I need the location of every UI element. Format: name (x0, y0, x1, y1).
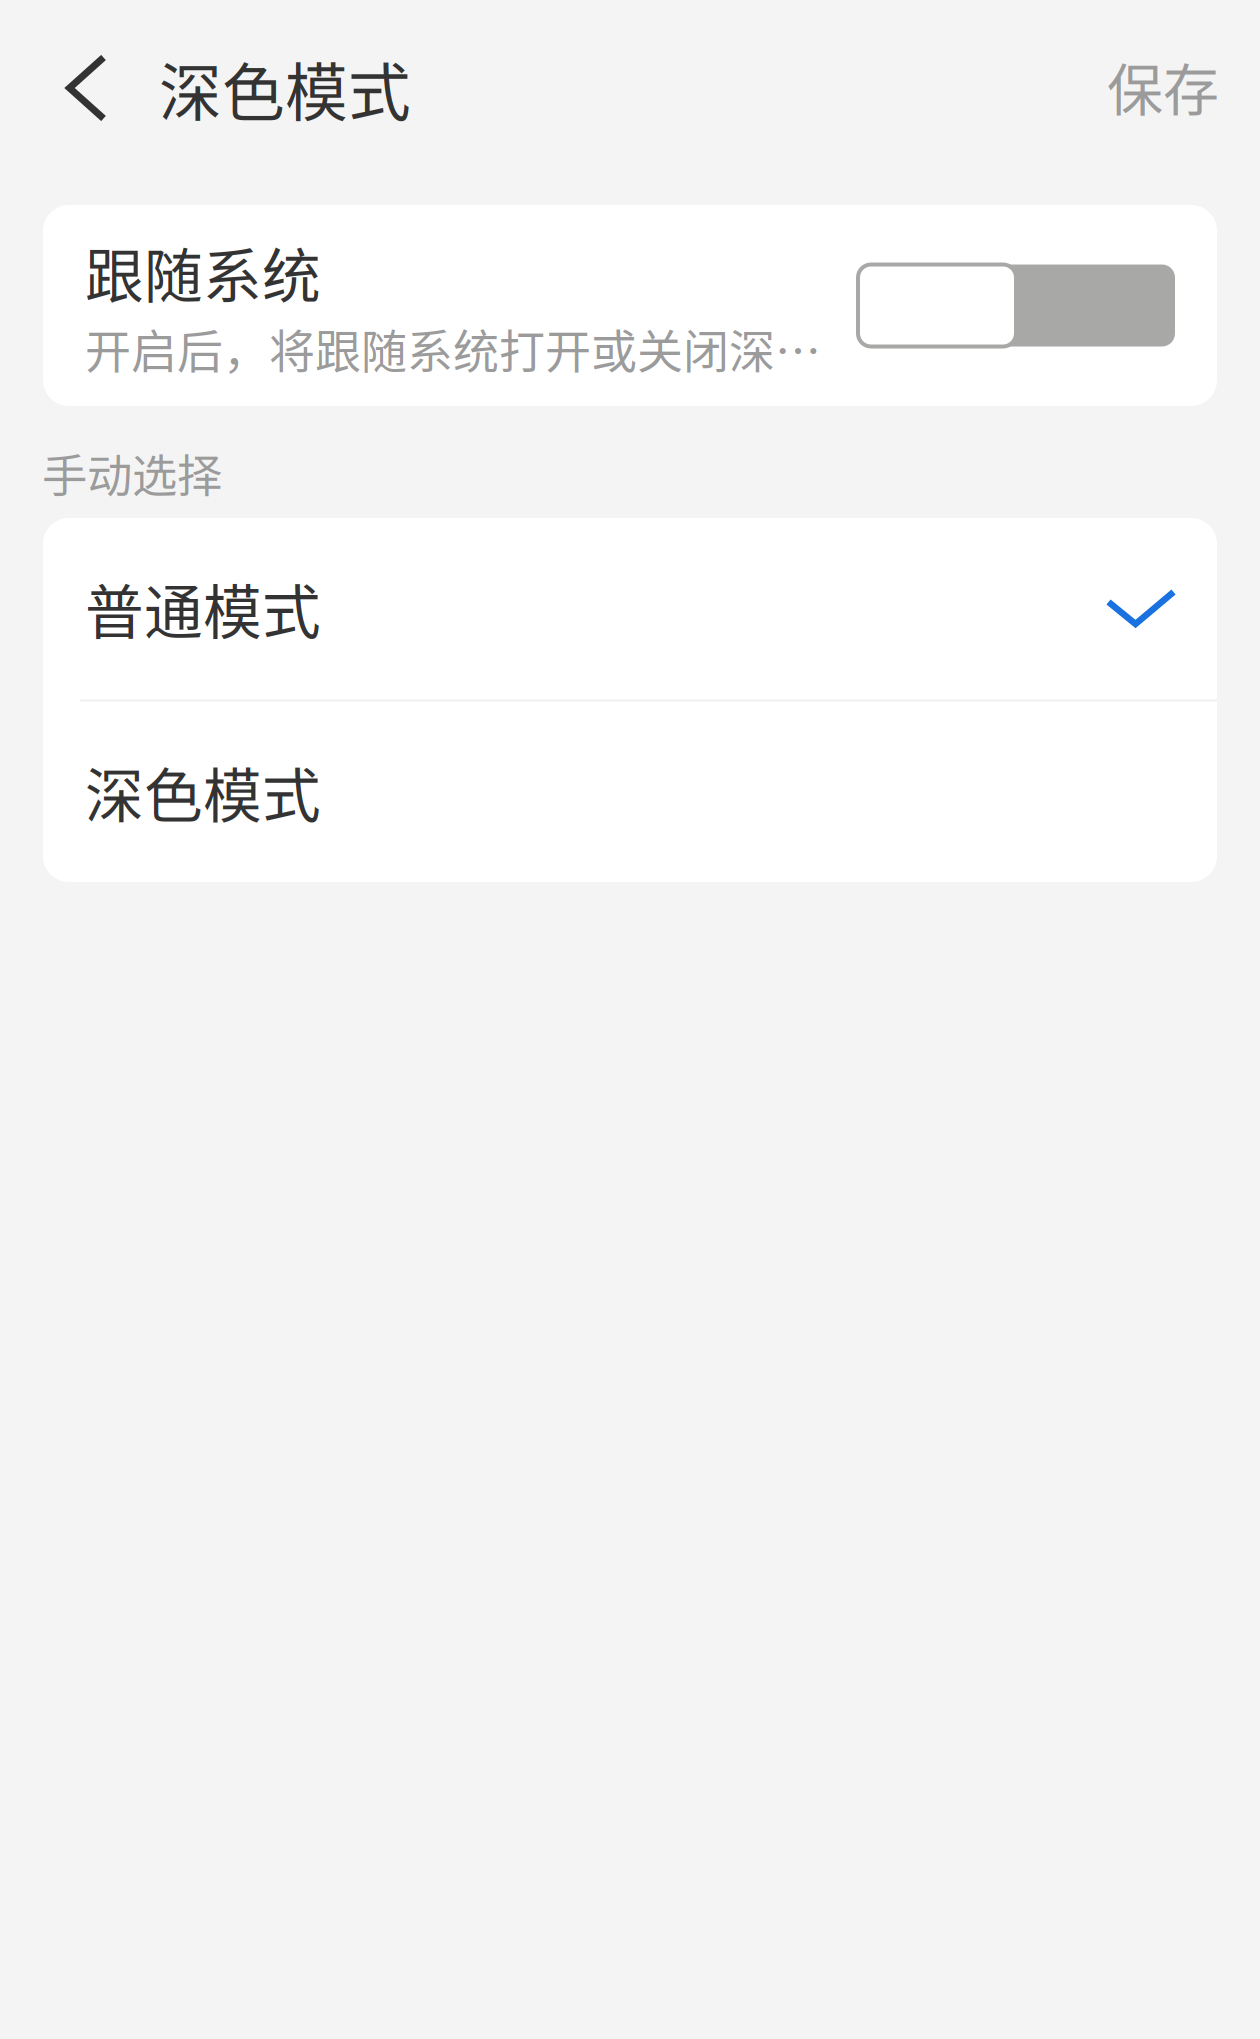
button[interactable]: 普通模式 (43, 518, 1217, 699)
staticText: 跟随系统 (85, 230, 321, 315)
staticText: 普通模式 (85, 566, 321, 651)
staticText: 深色模式 (159, 43, 411, 133)
staticText: 保存 (1107, 45, 1219, 127)
staticText: 手动选择 (42, 440, 222, 506)
staticText: 深色模式 (85, 749, 321, 834)
button[interactable]: 跟随系统 (43, 205, 1217, 406)
button[interactable]: 保存 (1085, 23, 1241, 153)
button[interactable]: 深色模式 (43, 702, 1217, 882)
button[interactable]: Back (0, 23, 159, 153)
staticText: 开启后，将跟随系统打开或关闭深… (85, 315, 821, 381)
